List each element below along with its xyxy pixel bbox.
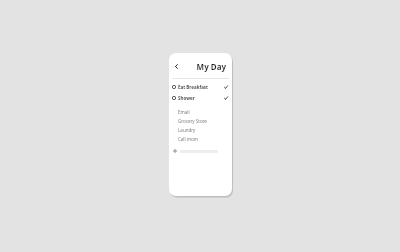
button[interactable]: Back [172, 62, 181, 71]
staticText: Email [178, 109, 190, 115]
button[interactable]: Call mom [169, 134, 232, 143]
staticText: Grocery Store [178, 118, 207, 124]
button[interactable]: Shower [169, 94, 232, 102]
button[interactable]: Email [169, 107, 232, 116]
staticText: My Day [182, 61, 226, 72]
staticText: Call mom [178, 136, 198, 142]
button[interactable]: Add task [169, 146, 232, 156]
staticText: Shower [178, 95, 224, 101]
button[interactable]: Eat Breakfast [169, 83, 232, 91]
button[interactable]: Laundry [169, 125, 232, 134]
other: Add task [172, 148, 178, 154]
staticText: Eat Breakfast [178, 84, 224, 90]
staticText: Laundry [178, 127, 196, 133]
button[interactable]: Grocery Store [169, 116, 232, 125]
